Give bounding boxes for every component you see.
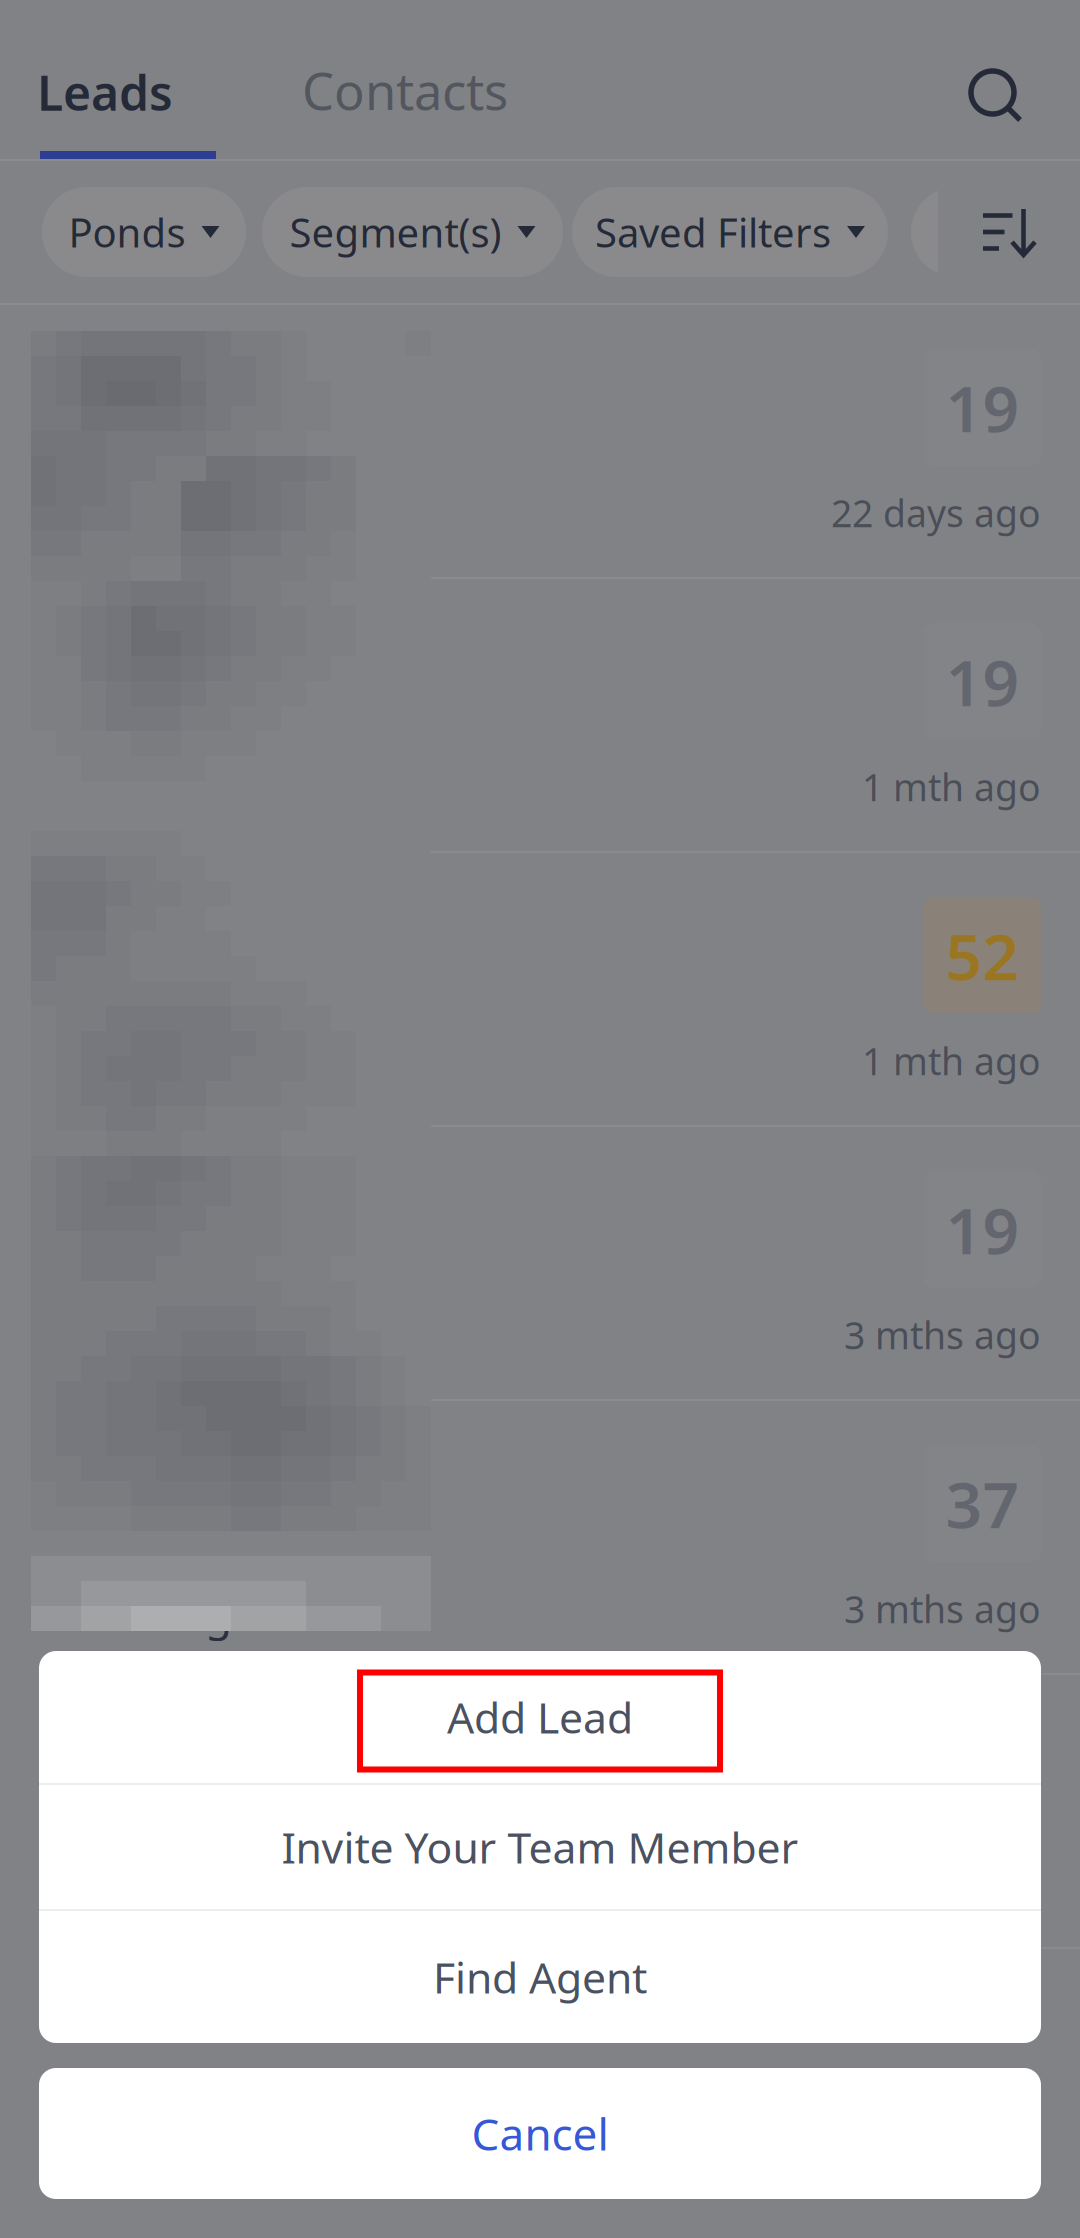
staticText: 22 days ago bbox=[831, 488, 1041, 538]
staticText: Find Agent bbox=[433, 1949, 647, 2005]
button[interactable]: Saved Filters bbox=[572, 187, 888, 277]
staticText: Segment(s) bbox=[289, 205, 501, 258]
staticText: 19 bbox=[945, 639, 1019, 724]
button[interactable]: Find Agent bbox=[39, 1911, 1041, 2043]
staticText: Leads bbox=[37, 60, 173, 124]
button[interactable]: 37 bbox=[0, 1401, 1080, 1675]
button[interactable]: Ponds bbox=[42, 187, 246, 277]
button[interactable]: 19 bbox=[0, 1675, 1080, 1949]
staticText: 3 mths ago bbox=[844, 1310, 1041, 1360]
staticText: 37 bbox=[945, 1461, 1019, 1546]
staticText: Test Megan Lewis bbox=[46, 1584, 409, 1642]
button[interactable]: 52 bbox=[0, 853, 1080, 1127]
staticText: Saved Filters bbox=[595, 205, 831, 258]
button[interactable]: 19 bbox=[0, 579, 1080, 853]
staticText: Ponds bbox=[68, 205, 185, 258]
staticText: Invite Your Team Member bbox=[281, 1819, 798, 1875]
button[interactable]: Contacts bbox=[216, 57, 508, 159]
button[interactable]: Search bbox=[968, 68, 1080, 159]
button[interactable]: Invite Your Team Member bbox=[39, 1785, 1041, 1909]
staticText: 3 mths ago bbox=[844, 1584, 1041, 1634]
button[interactable]: 19 bbox=[0, 305, 1080, 579]
button[interactable]: 19 bbox=[0, 1127, 1080, 1401]
button[interactable]: Leads bbox=[0, 60, 216, 159]
staticText: 52 bbox=[945, 913, 1019, 998]
button[interactable]: Sort bbox=[938, 161, 1080, 303]
staticText: Contacts bbox=[302, 57, 508, 124]
staticText: 19 bbox=[945, 1187, 1019, 1272]
staticText: 19 bbox=[945, 365, 1019, 450]
staticText: 1 mth ago bbox=[862, 1036, 1041, 1086]
button[interactable]: Cancel bbox=[39, 2068, 1041, 2199]
button[interactable]: Add Lead bbox=[39, 1651, 1041, 1783]
staticText: Add Lead bbox=[447, 1689, 633, 1745]
button[interactable]: Segment(s) bbox=[262, 187, 563, 277]
staticText: Cancel bbox=[471, 2104, 608, 2163]
staticText: 1 mth ago bbox=[862, 762, 1041, 812]
